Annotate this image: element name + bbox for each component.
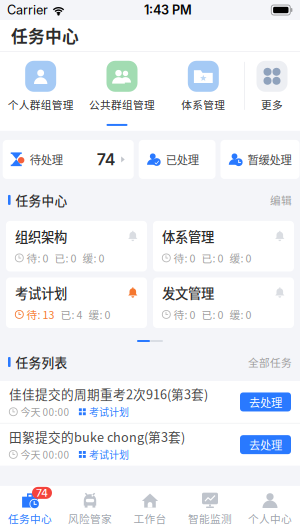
staticText: 待处理 (30, 152, 63, 166)
button[interactable]: 待处理 (3, 140, 134, 179)
staticText: 考试计划 (89, 448, 129, 461)
staticText: 任务列表 (16, 354, 68, 370)
staticText: 74 (97, 151, 116, 168)
button[interactable]: 更多 (244, 61, 300, 111)
button[interactable]: 考试计划 (6, 277, 147, 328)
button[interactable]: 编辑 (270, 193, 292, 206)
button[interactable]: 公共群组管理 (81, 61, 163, 111)
button[interactable]: 全部任务 (248, 355, 292, 368)
staticText: 更多 (261, 98, 283, 111)
staticText: 暂缓处理 (247, 152, 291, 166)
button[interactable]: 智能监测 (180, 492, 240, 525)
button[interactable]: 体系管理 (163, 61, 244, 111)
staticText: 任务中心 (8, 512, 52, 525)
button[interactable]: 风险管家 (60, 492, 120, 525)
staticText: 工作台 (133, 512, 166, 525)
staticText: 考试计划 (89, 406, 129, 418)
button[interactable]: 去处理 (240, 392, 291, 411)
staticText: 待: 0 (174, 251, 196, 264)
button[interactable]: 工作台 (120, 492, 180, 525)
staticText: 缓: 0 (230, 251, 252, 264)
staticText: 风险管家 (68, 512, 112, 525)
staticText: 智能监测 (188, 512, 232, 525)
staticText: 发文管理 (162, 284, 214, 301)
staticText: 已: 0 (55, 251, 77, 264)
button[interactable]: 暂缓处理 (220, 140, 299, 179)
staticText: 任务中心 (11, 25, 79, 46)
button[interactable]: 发文管理 (153, 277, 294, 328)
staticText: 缓: 0 (83, 251, 105, 264)
staticText: 全部任务 (248, 355, 292, 368)
staticText: 个人中心 (248, 512, 292, 525)
staticText: 已: 0 (202, 308, 224, 321)
staticText: 去处理 (249, 438, 282, 452)
staticText: 待: 13 (27, 308, 55, 321)
staticText: Carrier (7, 3, 48, 17)
staticText: 公共群组管理 (89, 98, 155, 111)
staticText: 体系管理 (162, 228, 214, 244)
staticText: 个人群组管理 (8, 98, 74, 111)
staticText: 已: 4 (61, 308, 83, 321)
button[interactable]: 个人群组管理 (0, 61, 81, 111)
button[interactable]: 体系管理 (153, 221, 294, 271)
staticText: 74 (36, 487, 48, 499)
staticText: 今天 00:00 (21, 448, 70, 461)
staticText: 编辑 (270, 193, 292, 206)
staticText: 组织架构 (15, 228, 67, 244)
button[interactable]: 任务中心 (0, 492, 60, 525)
staticText: 1:43 PM (144, 3, 192, 17)
staticText: 缓: 0 (230, 308, 252, 321)
staticText: 已: 0 (202, 251, 224, 264)
staticText: 缓: 0 (89, 308, 111, 321)
staticText: 体系管理 (181, 98, 225, 111)
staticText: 今天 00:00 (21, 406, 70, 418)
staticText: 已处理 (166, 152, 199, 166)
staticText: 田絮提交的buke chong(第3套) (9, 429, 185, 444)
button[interactable]: 组织架构 (6, 221, 147, 271)
staticText: 考试计划 (15, 284, 67, 301)
staticText: 佳佳提交的周期重考2次916(第3套) (9, 386, 208, 402)
staticText: 任务中心 (16, 192, 68, 208)
staticText: 待: 0 (27, 251, 49, 264)
button[interactable]: 已处理 (139, 140, 216, 179)
staticText: 去处理 (249, 395, 282, 409)
button[interactable]: 个人中心 (240, 492, 300, 525)
staticText: 待: 0 (174, 308, 196, 321)
button[interactable]: 去处理 (240, 435, 291, 454)
